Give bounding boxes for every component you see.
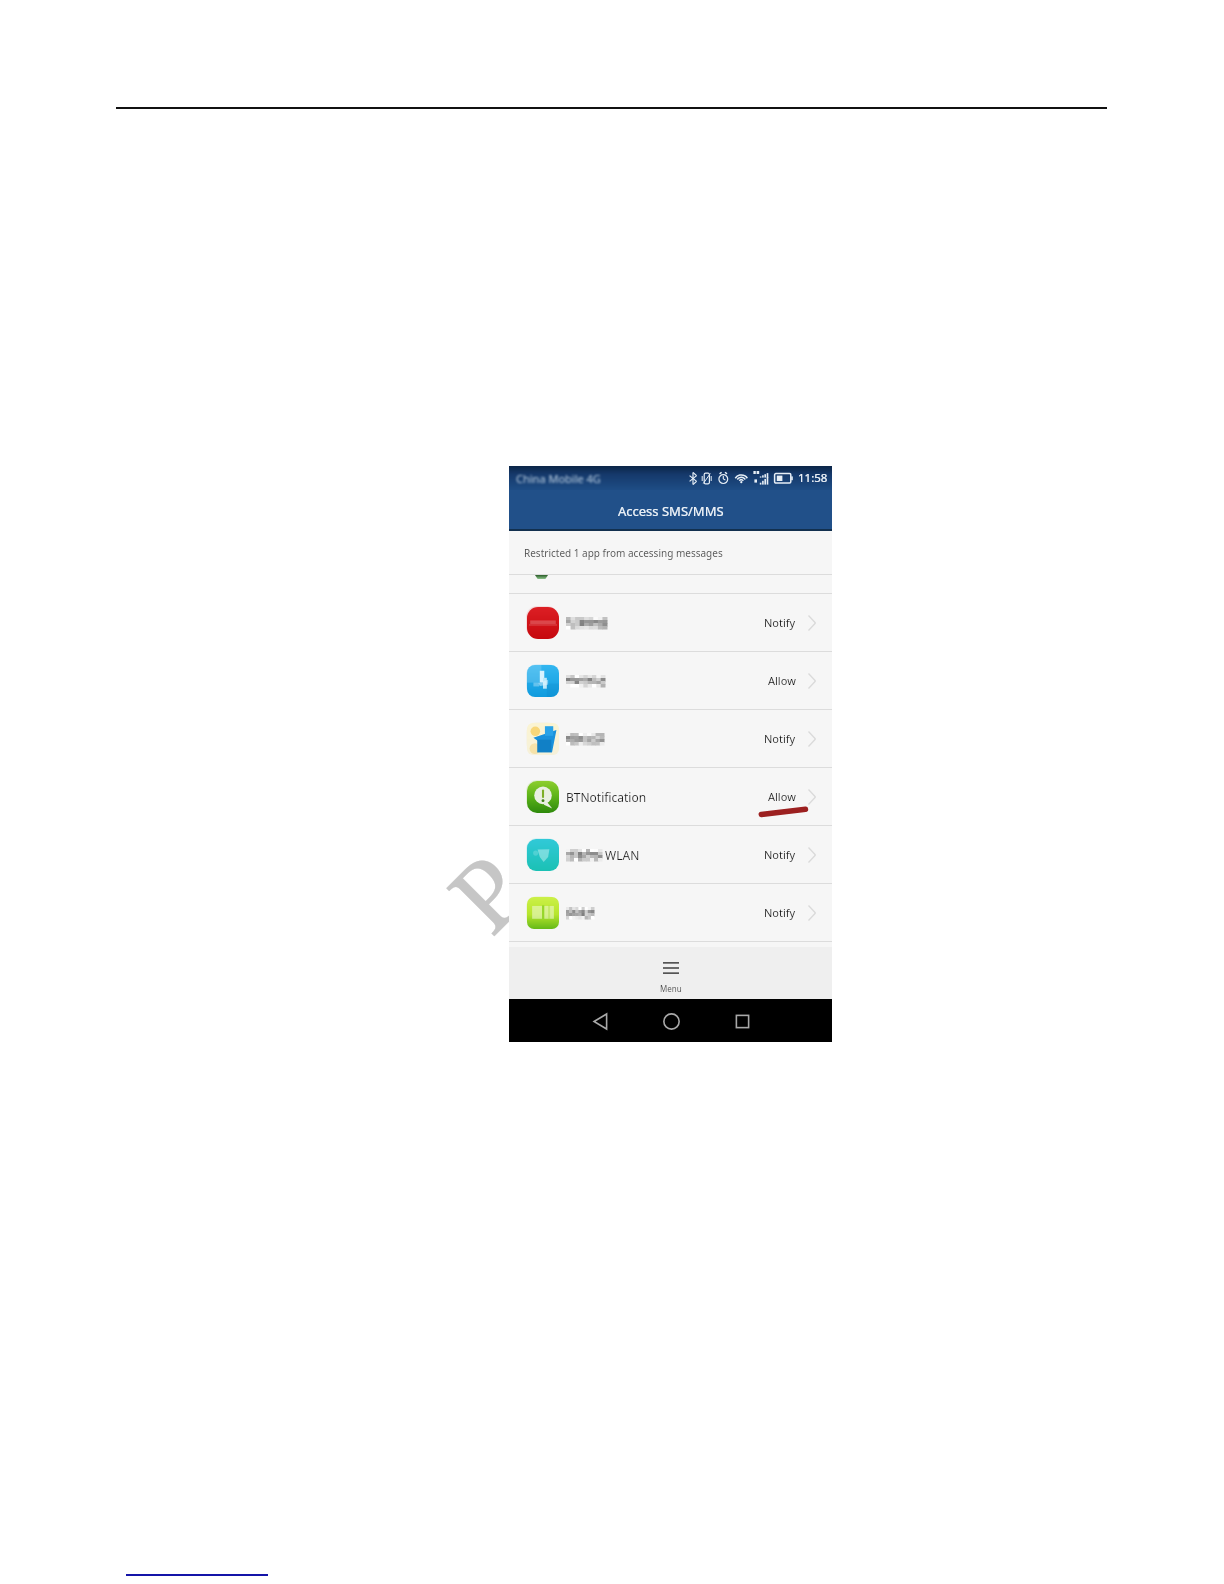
staticText: Notify (764, 905, 796, 920)
button[interactable]: Notify (509, 884, 832, 941)
staticText: Restricted 1 app from accessing messages (524, 546, 723, 560)
staticText: 11:58 (798, 470, 828, 486)
staticText: Allow (768, 789, 796, 804)
staticText: Notify (764, 847, 796, 862)
button[interactable]: Notify (509, 594, 832, 651)
button[interactable]: Notify (509, 710, 832, 767)
staticText: BTNotification (566, 789, 647, 805)
button[interactable]: Recents (730, 1009, 754, 1033)
staticText: P (420, 826, 538, 944)
button[interactable]: Home (659, 1009, 683, 1033)
button[interactable]: WLAN (509, 826, 832, 883)
button[interactable]: Allow (509, 652, 832, 709)
staticText: WLAN (602, 847, 640, 863)
button[interactable]: BTNotification (509, 768, 832, 825)
staticText: China Mobile 4G (516, 471, 601, 486)
staticText: Menu (660, 983, 682, 994)
button[interactable]: Back (588, 1009, 612, 1033)
staticText: Access SMS/MMS (618, 502, 724, 520)
staticText: Notify (764, 731, 796, 746)
button[interactable]: Menu (509, 947, 832, 999)
staticText: Allow (768, 673, 796, 688)
staticText: Notify (764, 615, 796, 630)
